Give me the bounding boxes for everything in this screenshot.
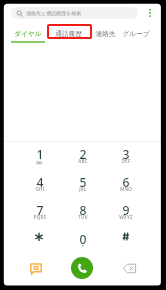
button[interactable]: Messages bbox=[26, 259, 46, 279]
button[interactable]: More options bbox=[143, 6, 157, 20]
staticText: 9 bbox=[108, 202, 144, 219]
staticText: TUV bbox=[65, 214, 101, 220]
button[interactable]: Call bbox=[71, 257, 93, 279]
button[interactable]: 7 bbox=[22, 198, 58, 224]
staticText: GHI bbox=[22, 186, 58, 192]
button[interactable]: 8 bbox=[65, 198, 101, 224]
staticText: 2 bbox=[65, 146, 101, 163]
button[interactable] bbox=[108, 227, 144, 253]
staticText: PQRS bbox=[22, 214, 58, 220]
staticText: 6 bbox=[108, 174, 144, 191]
staticText: 8 bbox=[65, 202, 101, 219]
staticText: DEF bbox=[108, 158, 144, 164]
button[interactable]: 連絡先 bbox=[87, 27, 123, 41]
button[interactable]: 通話履歴 bbox=[50, 27, 86, 41]
staticText: JKL bbox=[65, 186, 101, 192]
button[interactable] bbox=[22, 227, 58, 253]
button[interactable]: 1 bbox=[22, 142, 58, 168]
staticText: 3 bbox=[108, 146, 144, 163]
staticText: 0 bbox=[65, 231, 101, 248]
button[interactable]: 5 bbox=[65, 170, 101, 196]
staticText: 連絡先と通話履歴を検索 bbox=[26, 10, 82, 16]
button[interactable]: 3 bbox=[108, 142, 144, 168]
button[interactable]: グループ bbox=[118, 27, 154, 41]
staticText: 5 bbox=[65, 174, 101, 191]
button[interactable]: 2 bbox=[65, 142, 101, 168]
button[interactable]: pound bbox=[108, 227, 144, 253]
button[interactable]: star bbox=[22, 227, 58, 253]
button[interactable]: 0 bbox=[65, 227, 101, 253]
staticText: MNO bbox=[108, 186, 144, 192]
button[interactable]: 4 bbox=[22, 170, 58, 196]
staticText: グループ bbox=[122, 30, 150, 38]
staticText: 1 bbox=[22, 146, 58, 163]
button[interactable]: 連絡先と通話履歴を検索 bbox=[11, 7, 138, 19]
staticText: 通話履歴 bbox=[55, 30, 82, 38]
staticText bbox=[22, 231, 58, 248]
staticText: WXYZ bbox=[108, 214, 144, 220]
button[interactable]: Backspace bbox=[119, 258, 139, 278]
staticText: + bbox=[65, 243, 101, 249]
button[interactable]: ダイヤル bbox=[10, 27, 46, 41]
staticText: 7 bbox=[22, 202, 58, 219]
button[interactable]: 6 bbox=[108, 170, 144, 196]
staticText: 4 bbox=[22, 174, 58, 191]
staticText: ダイヤル bbox=[14, 30, 42, 38]
button[interactable]: 1 voicemail bbox=[22, 142, 58, 168]
button[interactable]: 9 bbox=[108, 198, 144, 224]
staticText: ABC bbox=[65, 158, 101, 164]
staticText bbox=[108, 231, 144, 248]
staticText: 連絡先 bbox=[95, 30, 116, 38]
